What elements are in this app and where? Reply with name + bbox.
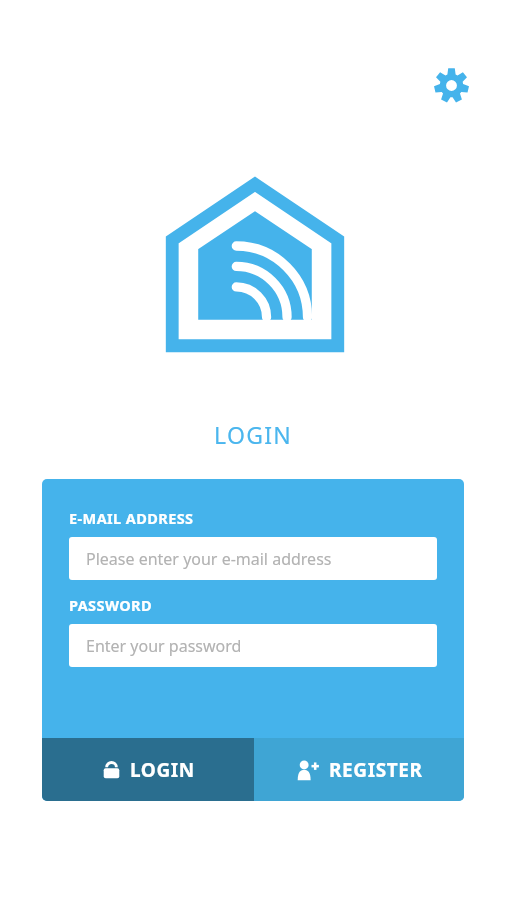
staticText: Please enter your e-mail address (86, 548, 332, 570)
button[interactable]: LOGIN (42, 738, 254, 801)
button[interactable]: REGISTER (254, 738, 464, 801)
staticText: LOGIN (214, 419, 293, 450)
staticText: Enter your password (86, 635, 242, 657)
button[interactable]: Please enter your e-mail address (69, 537, 437, 580)
staticText: PASSWORD (69, 595, 152, 615)
button[interactable]: Enter your password (69, 624, 437, 667)
staticText: LOGIN (130, 757, 195, 783)
button[interactable]: Settings (423, 57, 479, 113)
staticText: E-MAIL ADDRESS (69, 508, 194, 528)
staticText: REGISTER (329, 757, 423, 783)
